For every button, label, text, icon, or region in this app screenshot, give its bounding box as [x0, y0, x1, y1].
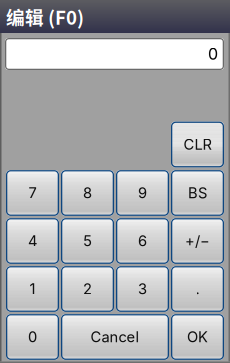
button[interactable]: 6: [116, 218, 169, 264]
staticText: 0: [28, 328, 37, 346]
button[interactable]: 9: [116, 170, 169, 216]
staticText: 0: [208, 44, 218, 64]
button[interactable]: OK: [171, 314, 224, 360]
button[interactable]: 5: [61, 218, 114, 264]
staticText: 1: [29, 280, 35, 298]
button[interactable]: 2: [61, 266, 114, 312]
button[interactable]: Cancel: [61, 314, 169, 360]
button[interactable]: 3: [116, 266, 169, 312]
staticText: BS: [188, 184, 207, 202]
button[interactable]: 0: [6, 314, 59, 360]
button[interactable]: +/−: [171, 218, 224, 264]
staticText: 2: [83, 280, 92, 298]
staticText: 7: [28, 184, 36, 202]
button[interactable]: 1: [6, 266, 59, 312]
staticText: 5: [83, 232, 92, 250]
button[interactable]: CLR: [171, 122, 224, 167]
button[interactable]: 8: [61, 170, 114, 216]
staticText: .: [195, 280, 199, 298]
staticText: Cancel: [90, 328, 139, 346]
staticText: 编辑 (F0): [6, 3, 84, 30]
button[interactable]: .: [171, 266, 224, 312]
staticText: 8: [83, 184, 92, 202]
staticText: +/−: [185, 232, 210, 250]
button[interactable]: 7: [6, 170, 59, 216]
staticText: CLR: [183, 136, 211, 153]
staticText: 4: [28, 232, 37, 250]
staticText: OK: [187, 328, 208, 346]
button[interactable]: BS: [171, 170, 224, 216]
button[interactable]: 4: [6, 218, 59, 264]
staticText: 3: [138, 280, 147, 298]
staticText: 9: [138, 184, 147, 202]
staticText: 6: [138, 232, 147, 250]
